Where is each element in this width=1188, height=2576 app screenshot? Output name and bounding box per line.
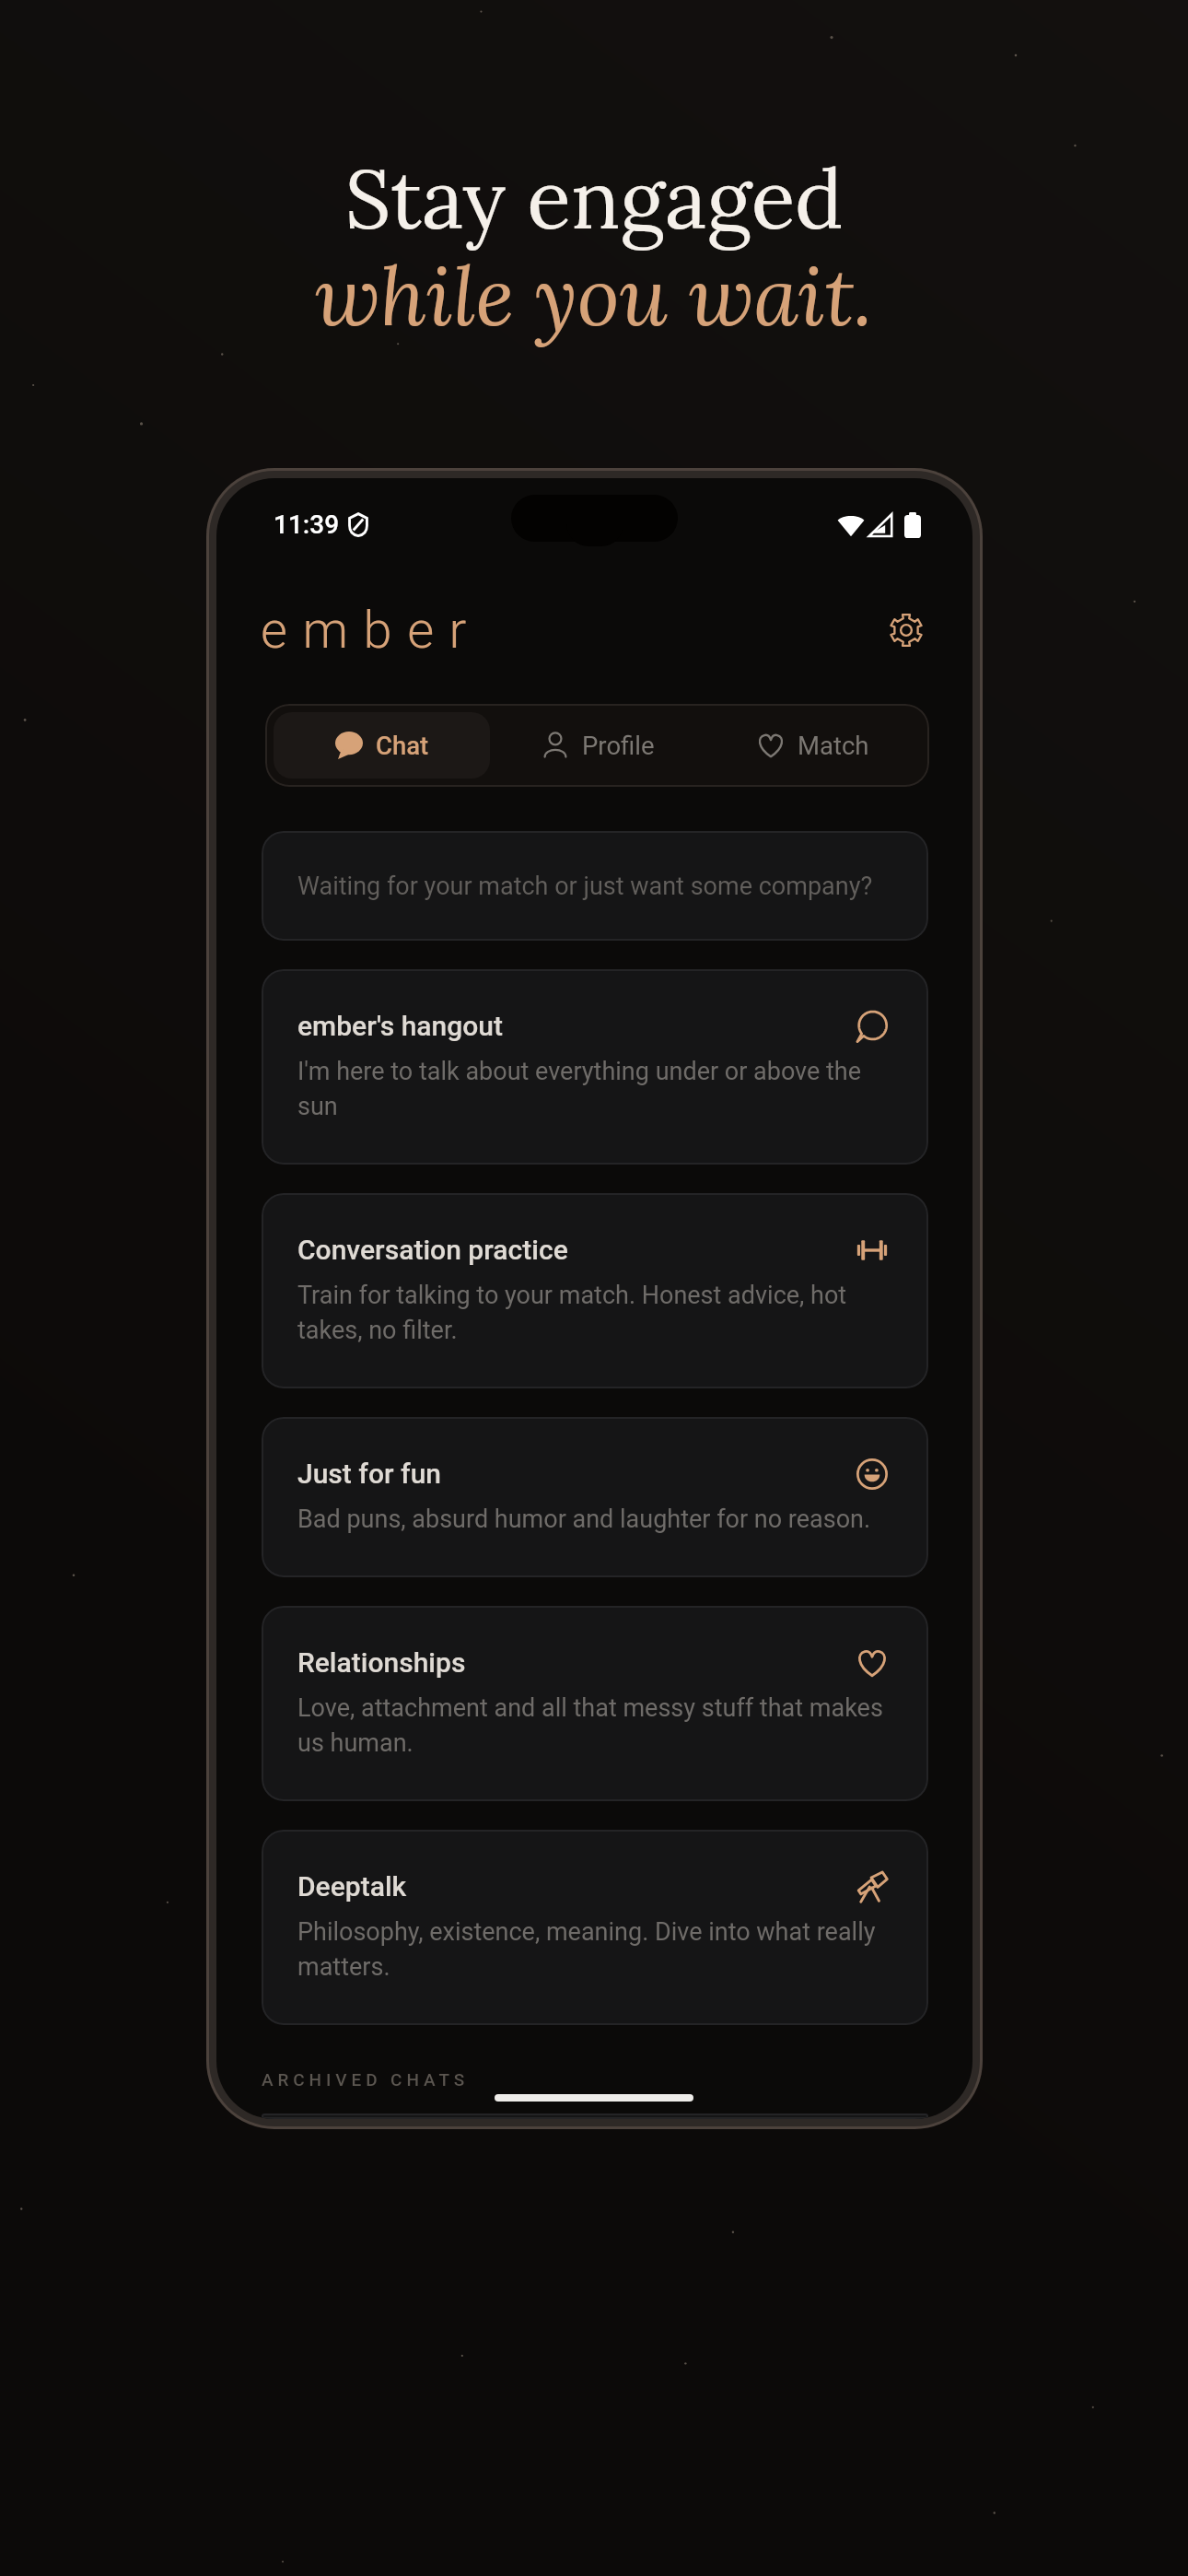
staticText: Deeptalk — [297, 1870, 856, 1903]
button[interactable]: Conversation practice — [262, 1193, 928, 1388]
button[interactable]: Profile — [490, 712, 705, 779]
button[interactable]: Match — [705, 712, 921, 779]
staticText: ember — [261, 600, 482, 661]
staticText: Waiting for your match or just want some… — [297, 872, 873, 901]
button[interactable]: Settings — [877, 601, 936, 660]
button[interactable]: Chat — [274, 712, 490, 779]
staticText: I'm here to talk about everything under … — [297, 1057, 888, 1121]
staticText: Conversation practice — [297, 1234, 856, 1266]
staticText: Just for fun — [297, 1458, 856, 1490]
button[interactable]: ember's hangout — [262, 969, 928, 1165]
staticText: Chat — [376, 731, 429, 760]
button[interactable] — [262, 2113, 928, 2119]
staticText: Match — [798, 731, 869, 760]
button[interactable]: Just for fun — [262, 1417, 928, 1577]
button[interactable]: Relationships — [262, 1606, 928, 1801]
staticText: Train for talking to your match. Honest … — [297, 1281, 888, 1345]
staticText: Philosophy, existence, meaning. Dive int… — [297, 1917, 888, 1982]
staticText: 11:39 — [274, 509, 340, 540]
staticText: Relationships — [297, 1646, 856, 1679]
button[interactable]: Deeptalk — [262, 1830, 928, 2025]
staticText: Profile — [582, 731, 655, 760]
staticText: Stay engaged — [344, 146, 844, 251]
staticText: ARCHIVED CHATS — [262, 2069, 470, 2090]
staticText: Bad puns, absurd humor and laughter for … — [297, 1505, 871, 1534]
staticText: while you wait. — [315, 243, 873, 347]
staticText: Love, attachment and all that messy stuf… — [297, 1693, 888, 1758]
staticText: ember's hangout — [297, 1010, 856, 1042]
button[interactable]: Waiting for your match or just want some… — [262, 831, 928, 941]
